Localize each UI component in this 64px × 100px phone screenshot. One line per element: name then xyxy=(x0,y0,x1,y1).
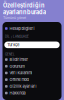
staticText: Hesap bilgileri xyxy=(9,26,34,31)
staticText: Offline mod xyxy=(9,77,28,82)
button[interactable]: Veri kullanımı xyxy=(2,70,61,76)
button[interactable]: Gizlilik ayarları xyxy=(2,83,61,90)
staticText: Veri kullanımı xyxy=(9,71,32,75)
button[interactable]: Görünüm xyxy=(2,63,61,70)
staticText: Gizlilik ayarları xyxy=(9,84,36,89)
staticText: GENEL xyxy=(5,53,15,56)
button[interactable]: Bildirimler xyxy=(2,56,61,63)
staticText: ayarların burada xyxy=(3,9,46,16)
staticText: Tümünü yönet xyxy=(3,16,26,20)
staticText: Türkçe xyxy=(7,42,19,47)
button[interactable]: Hakkında xyxy=(2,90,61,96)
staticText: Bildirimler xyxy=(9,57,27,62)
button[interactable]: Hesap bilgileri xyxy=(2,24,61,32)
staticText: Görünüm xyxy=(9,64,24,69)
staticText: Özelleştirdiğin xyxy=(3,2,44,9)
staticText: Hakkında xyxy=(9,91,25,95)
button[interactable]: Türkçe xyxy=(4,41,60,48)
staticText: DİL / LANGUAGE xyxy=(5,35,29,38)
button[interactable]: Offline mod xyxy=(2,76,61,83)
